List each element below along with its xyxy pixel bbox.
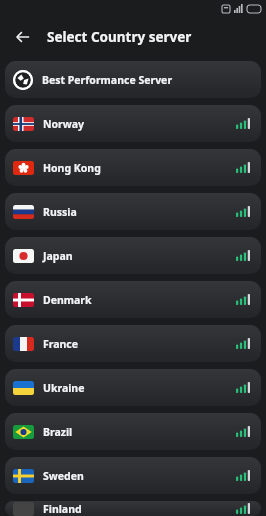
other: Signal strength	[236, 503, 250, 514]
button[interactable]: Japan	[5, 237, 261, 274]
staticText: Sweden	[43, 469, 236, 483]
button[interactable]: Ukraine	[5, 369, 261, 406]
button[interactable]: France	[5, 325, 261, 362]
button[interactable]: Norway	[5, 105, 261, 142]
button[interactable]: Russia	[5, 193, 261, 230]
staticText: Norway	[43, 117, 236, 131]
other: Signal strength	[236, 206, 250, 217]
staticText: Russia	[43, 205, 236, 219]
button[interactable]: Brazil	[5, 413, 261, 450]
button[interactable]: Best Performance Server	[5, 61, 261, 98]
other: Signal strength	[236, 294, 250, 305]
staticText: Denmark	[43, 293, 236, 307]
button[interactable]: Hong Kong	[5, 149, 261, 186]
button[interactable]: Denmark	[5, 281, 261, 318]
other: Signal strength	[236, 470, 250, 481]
button[interactable]: Sweden	[5, 457, 261, 494]
other: Signal strength	[236, 338, 250, 349]
staticText: France	[43, 337, 236, 351]
button[interactable]: Back	[9, 23, 37, 51]
other: Signal strength	[236, 162, 250, 173]
staticText: Japan	[43, 249, 236, 263]
button[interactable]: Finland	[5, 501, 261, 516]
staticText: Brazil	[43, 425, 236, 439]
other: Signal strength	[236, 426, 250, 437]
other: Signal strength	[236, 250, 250, 261]
staticText: Best Performance Server	[42, 73, 173, 87]
staticText: Finland	[43, 502, 236, 516]
other: Signal strength	[236, 118, 250, 129]
staticText: Hong Kong	[43, 161, 236, 175]
staticText: Select Country server	[47, 28, 192, 46]
staticText: Ukraine	[43, 381, 236, 395]
other: Signal strength	[236, 382, 250, 393]
